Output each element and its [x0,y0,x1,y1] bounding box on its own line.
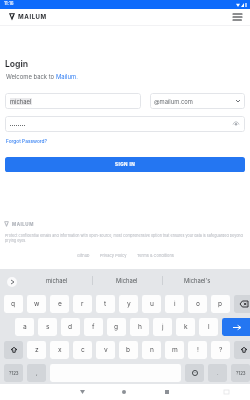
staticText: michael [10,98,32,105]
staticText: ! [197,346,199,354]
button[interactable]: Menu [230,9,245,24]
staticText: . [217,370,219,377]
staticText: c [81,346,85,354]
staticText: @mailum.com [154,98,193,105]
button[interactable]: k [176,318,195,336]
button[interactable]: Shift [234,341,250,359]
button[interactable]: , [27,364,46,382]
button[interactable]: Terms & Conditions [132,253,179,258]
staticText: m [172,346,178,354]
button[interactable]: q [4,295,23,313]
button[interactable]: j [153,318,172,336]
staticText: ?123 [9,371,19,376]
staticText: a [23,323,27,331]
button[interactable]: Forgot Password? [6,138,48,144]
staticText: u [150,300,154,308]
button[interactable]: n [142,341,161,359]
staticText: ?123 [236,371,246,376]
button[interactable]: SIGN IN [5,157,245,172]
button[interactable]: p [211,295,230,313]
button[interactable]: Expand suggestions [2,272,22,292]
button[interactable]: x [50,341,69,359]
staticText: v [104,346,108,354]
staticText: Michael's [184,277,211,284]
button[interactable]: z [27,341,46,359]
staticText: michael [46,277,68,284]
button[interactable]: Emoji [185,364,204,382]
button[interactable]: Michael's [162,269,232,292]
staticText: w [34,300,40,308]
button[interactable]: Privacy Policy [95,253,132,258]
button[interactable]: e [50,295,69,313]
staticText: h [138,323,142,331]
button[interactable]: l [199,318,218,336]
staticText: n [150,346,154,354]
staticText: 11:16 [4,1,14,6]
staticText: i [174,300,176,308]
staticText: d [68,323,73,331]
staticText: , [36,370,38,377]
button[interactable]: y [119,295,138,313]
staticText: Welcome back to [6,73,56,80]
staticText: o [196,300,200,308]
button[interactable]: Backspace [234,295,250,313]
button[interactable]: i [165,295,184,313]
button[interactable]: @mailum.com [150,93,245,109]
button[interactable]: o [188,295,207,313]
button[interactable]: f [84,318,103,336]
staticText: g [114,323,119,331]
button[interactable]: Enter [222,318,250,336]
button[interactable]: michael [22,269,92,292]
button[interactable]: w [27,295,46,313]
staticText: t [104,300,107,308]
staticText: p [218,300,223,308]
staticText: b [126,346,131,354]
button[interactable]: m [165,341,184,359]
button[interactable]: Michael [92,269,162,292]
staticText: e [58,300,62,308]
button[interactable]: a [15,318,34,336]
staticText: s [46,323,50,331]
staticText: j [162,323,164,331]
button[interactable]: ?123 [231,364,250,382]
staticText: Mailum. [56,73,78,80]
button[interactable]: ! [188,341,207,359]
button[interactable]: ?123 [4,364,23,382]
button[interactable]: d [61,318,80,336]
staticText: f [92,323,95,331]
button[interactable]: g [107,318,126,336]
button[interactable]: h [130,318,149,336]
staticText: q [11,300,16,308]
button[interactable]: r [73,295,92,313]
button[interactable]: Switch keyboard [218,384,234,400]
staticText: SIGN IN [115,162,136,168]
staticText: y [127,300,131,308]
staticText: z [35,346,39,354]
staticText: Protect confidential emails and informat… [5,233,244,243]
button[interactable]: ? [211,341,230,359]
button[interactable]: Recents [157,384,177,400]
staticText: x [58,346,62,354]
button[interactable]: c [73,341,92,359]
button[interactable]: MAILUM [9,13,47,20]
button[interactable]: Back [72,384,92,400]
button[interactable]: michael [5,93,141,109]
button[interactable]: b [119,341,138,359]
button[interactable] [5,116,245,132]
staticText: r [81,300,84,308]
button[interactable]: t [96,295,115,313]
staticText: Login [5,59,28,69]
button[interactable]: v [96,341,115,359]
button[interactable]: u [142,295,161,313]
button[interactable]: Github [72,253,95,258]
staticText: ? [219,346,223,354]
staticText: MAILUM [18,13,47,20]
button[interactable]: Home [114,384,134,400]
button[interactable]: Shift [4,341,23,359]
staticText: Michael [116,277,138,284]
staticText: MAILUM [12,222,34,227]
button[interactable]: s [38,318,57,336]
staticText: l [208,323,210,331]
